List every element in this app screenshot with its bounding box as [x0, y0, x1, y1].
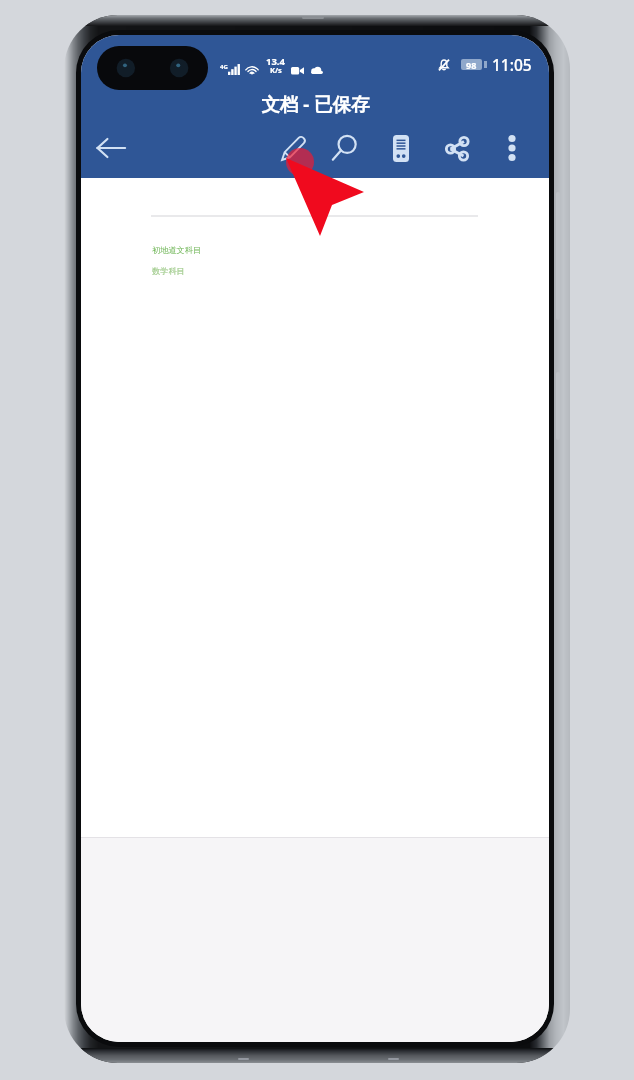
- staticText: K/s: [270, 65, 282, 75]
- button[interactable]: Search: [317, 121, 371, 175]
- staticText: 数学科目: [152, 266, 185, 276]
- button[interactable]: Outline: [374, 121, 428, 175]
- staticText: 4G: [220, 63, 228, 71]
- staticText: 文档 - 已保存: [261, 91, 370, 116]
- button[interactable]: Share: [430, 121, 484, 175]
- staticText: 11:05: [492, 54, 532, 75]
- button[interactable]: Edit: [267, 121, 321, 175]
- button[interactable]: Back: [85, 122, 137, 174]
- staticText: 13.4: [266, 55, 285, 68]
- staticText: 初地道文科目: [152, 245, 202, 255]
- button[interactable]: More options: [485, 121, 539, 175]
- staticText: 98: [466, 59, 477, 70]
